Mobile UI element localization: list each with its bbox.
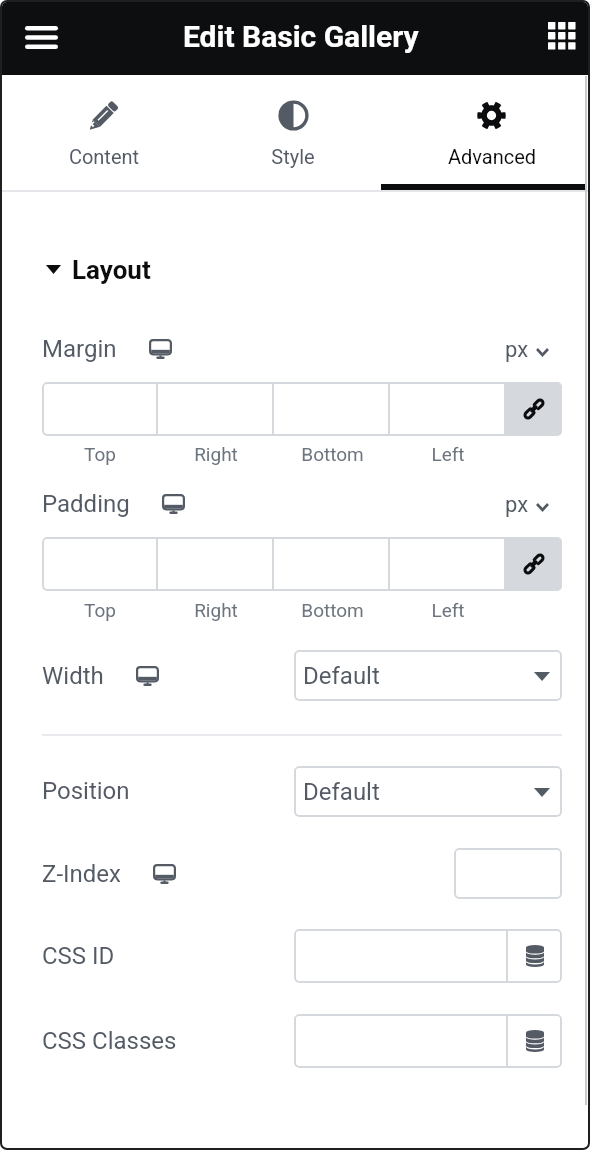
button[interactable] <box>158 537 272 591</box>
button[interactable] <box>42 382 156 436</box>
button[interactable] <box>454 848 562 899</box>
staticText: Default <box>303 662 380 690</box>
staticText: Left <box>431 599 465 621</box>
button[interactable] <box>390 537 504 591</box>
staticText: CSS Classes <box>42 1027 177 1055</box>
staticText: Advanced <box>432 145 552 168</box>
button[interactable]: px <box>505 492 548 518</box>
staticText: Margin <box>42 335 117 363</box>
button[interactable] <box>274 537 388 591</box>
staticText: Position <box>42 777 130 805</box>
button[interactable]: Link values together <box>506 537 562 591</box>
button[interactable] <box>2 75 206 191</box>
staticText: Left <box>431 443 465 465</box>
button[interactable]: Dynamic tags <box>508 929 562 983</box>
staticText: CSS ID <box>42 942 115 970</box>
staticText: Z-Index <box>42 860 121 888</box>
button[interactable] <box>294 1014 506 1068</box>
button[interactable]: px <box>505 337 548 363</box>
staticText: Right <box>194 443 238 465</box>
staticText: px <box>505 337 529 363</box>
button[interactable] <box>42 537 156 591</box>
staticText: Padding <box>42 490 130 518</box>
button[interactable] <box>274 382 388 436</box>
button[interactable] <box>158 382 272 436</box>
staticText: Width <box>42 662 104 690</box>
staticText: Top <box>84 443 116 465</box>
button[interactable]: Default <box>294 650 562 701</box>
staticText: Content <box>44 145 164 168</box>
button[interactable] <box>390 382 504 436</box>
button[interactable] <box>380 75 586 191</box>
staticText: Right <box>194 599 238 621</box>
staticText: Bottom <box>301 443 364 465</box>
button[interactable]: Open menu <box>11 7 71 67</box>
button[interactable] <box>294 929 506 983</box>
staticText: Layout <box>72 255 151 285</box>
staticText: px <box>505 492 529 518</box>
staticText: Bottom <box>301 599 364 621</box>
button[interactable]: Default <box>294 766 562 817</box>
button[interactable]: Widgets panel <box>534 8 588 64</box>
button[interactable]: Link values together <box>506 382 562 436</box>
staticText: Style <box>233 145 353 168</box>
staticText: Top <box>84 599 116 621</box>
button[interactable]: Layout <box>46 255 562 285</box>
staticText: Edit Basic Gallery <box>183 19 419 54</box>
staticText: Default <box>303 778 380 806</box>
button[interactable]: Dynamic tags <box>508 1014 562 1068</box>
button[interactable] <box>206 75 380 191</box>
